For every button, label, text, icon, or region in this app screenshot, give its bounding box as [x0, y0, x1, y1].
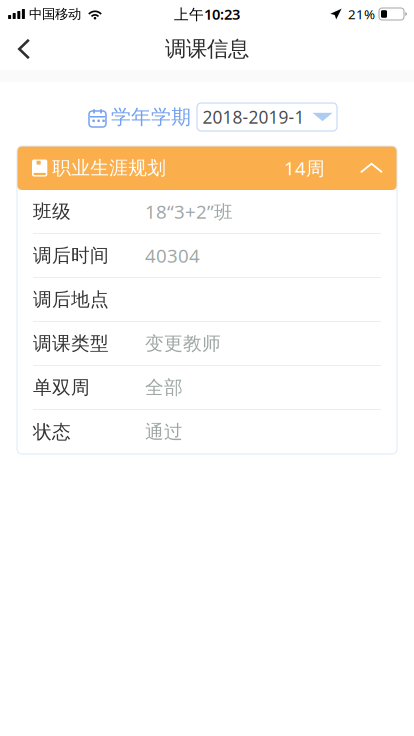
button[interactable]: 2018-2019-1 [197, 103, 337, 131]
staticText: 中国移动 [29, 6, 81, 22]
button[interactable]: 职业生涯规划 [17, 146, 397, 190]
staticText: 通过 [145, 420, 183, 443]
staticText: 21% [348, 5, 375, 23]
staticText: 调课信息 [165, 36, 249, 62]
staticText: 14周 [284, 156, 325, 180]
staticText: 全部 [145, 376, 183, 399]
staticText: 职业生涯规划 [52, 156, 166, 179]
staticText: 单双周 [33, 376, 90, 399]
staticText: 2018-2019-1 [202, 105, 304, 128]
staticText: 状态 [33, 420, 71, 443]
staticText: 18“3+2”班 [145, 199, 233, 224]
staticText: 调课类型 [33, 332, 109, 355]
staticText: 上午10:23 [174, 4, 240, 24]
staticText: 调后地点 [33, 288, 109, 311]
button[interactable]: 学年学期 [89, 103, 191, 131]
staticText: 变更教师 [145, 332, 221, 355]
staticText: 班级 [33, 200, 71, 223]
staticText: 学年学期 [111, 105, 191, 129]
staticText: 40304 [145, 243, 200, 268]
button[interactable]: 返回 [0, 28, 58, 70]
staticText: 调后时间 [33, 244, 109, 267]
